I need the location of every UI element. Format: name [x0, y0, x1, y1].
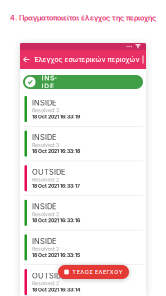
staticText: OUTSIDE [32, 167, 65, 176]
staticText: INSIDE [32, 98, 56, 107]
button[interactable]: Back [19, 50, 33, 69]
button[interactable]: INSIDE [20, 92, 146, 126]
staticText: ΤΕΛΟΣ ΕΛΕΓΧΟΥ [72, 269, 123, 275]
button[interactable]: OUTSIDE [20, 161, 146, 195]
staticText: INSIDE [32, 237, 56, 246]
button[interactable]: More [140, 55, 148, 63]
button[interactable]: INSIDE [20, 230, 146, 264]
button[interactable]: INSIDE [20, 127, 146, 161]
staticText: INSIDE [32, 202, 56, 211]
staticText: 18 Oct 2021 16:33:16 [32, 217, 80, 223]
button[interactable]: ΤΕΛΟΣ ΕΛΕΓΧΟΥ [58, 265, 129, 279]
button[interactable]: INSIDE [20, 196, 146, 230]
staticText: Resolved: 2 [32, 176, 59, 183]
staticText: Resolved: 3 [32, 142, 59, 148]
staticText: 4. Πραγματοποιείται έλεγχος της περιοχής [10, 14, 156, 22]
staticText: Έλεγχος εσωτερικών περιοχών [33, 55, 139, 64]
button[interactable]: OUTSIDE [20, 265, 146, 296]
staticText: 18 Oct 2021 16:33:18 [32, 148, 80, 154]
staticText: 18 Oct 2021 16:33:15 [32, 252, 80, 258]
staticText: Resolved: 2 [32, 211, 59, 217]
staticText: Resolved: 2 [32, 280, 59, 287]
staticText: 18 Oct 2021 16:33:19 [32, 114, 80, 120]
staticText: INSIDE [41, 74, 60, 90]
staticText: OUTSIDE [32, 271, 65, 280]
staticText: Resolved: 2 [32, 246, 59, 252]
staticText: Resolved: 3 [32, 107, 59, 114]
staticText: INSIDE [32, 133, 56, 142]
staticText: 18 Oct 2021 16:33:17 [32, 183, 80, 189]
staticText: 18 Oct 2021 16:33:14 [32, 287, 80, 293]
